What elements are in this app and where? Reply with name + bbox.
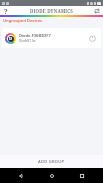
staticText: D xyxy=(9,36,13,42)
staticText: DIODE DYNAMICS xyxy=(30,8,74,14)
staticText: ADD GROUP xyxy=(38,159,65,164)
button[interactable]: Sync devices xyxy=(93,7,101,15)
staticText: DiodeBT Int xyxy=(19,39,36,43)
staticText: ? xyxy=(4,7,8,15)
staticText: Ungrouped Devices xyxy=(3,18,43,24)
button[interactable]: D xyxy=(2,28,101,48)
button[interactable]: Back xyxy=(11,168,31,183)
button[interactable]: Help xyxy=(2,7,10,15)
button[interactable]: Power toggle xyxy=(87,33,98,44)
button[interactable]: Recent apps xyxy=(72,168,92,183)
button[interactable]: ADD GROUP xyxy=(0,155,103,168)
button[interactable]: Home xyxy=(42,168,62,183)
staticText: Diode-F36B3DF7 xyxy=(19,33,51,38)
